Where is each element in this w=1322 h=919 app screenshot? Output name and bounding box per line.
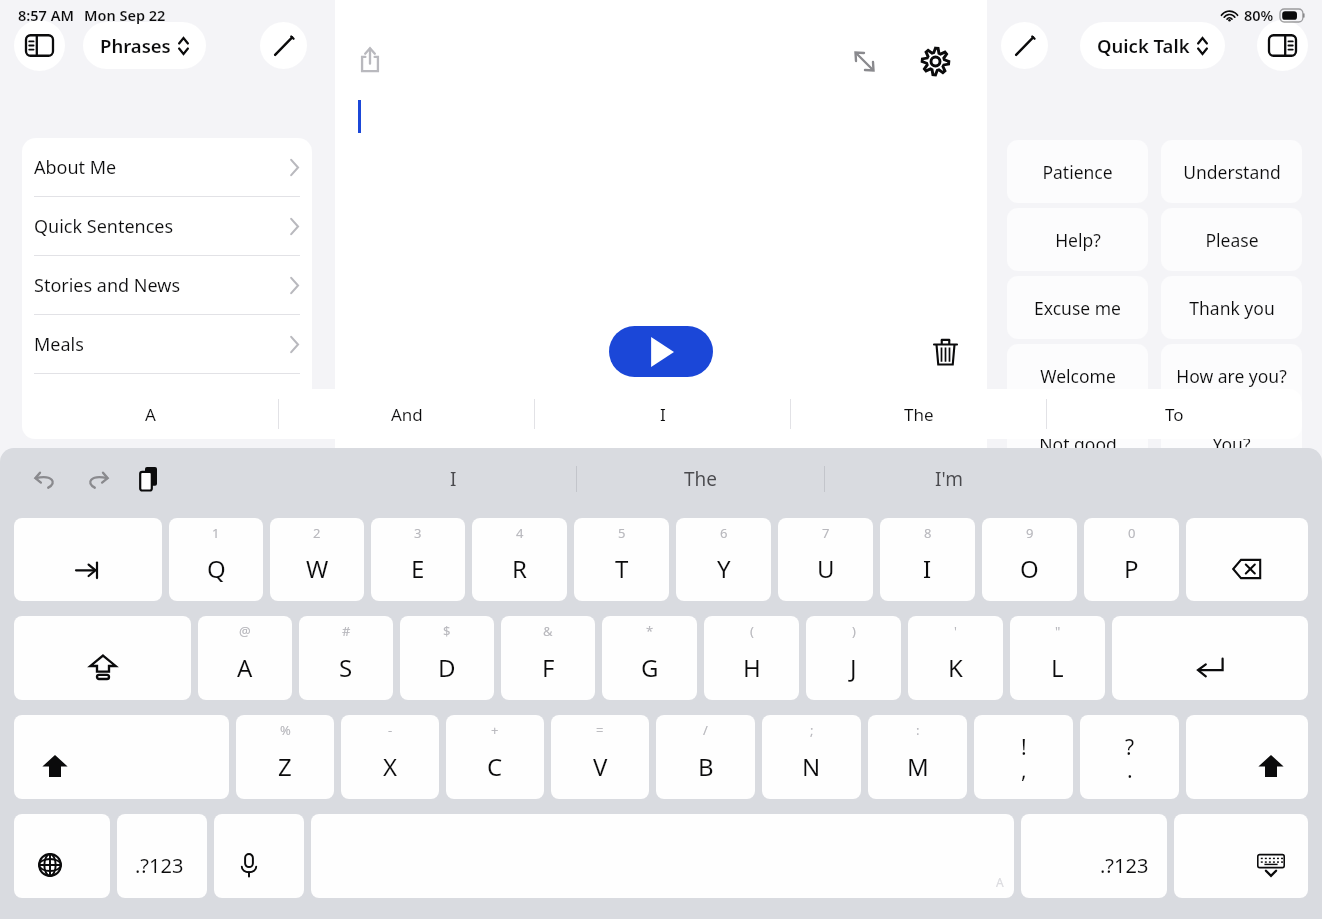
button[interactable]: ? bbox=[1080, 715, 1179, 799]
button[interactable]: 5 bbox=[574, 518, 669, 601]
button[interactable]: " bbox=[1010, 616, 1105, 700]
button[interactable]: Patience bbox=[1007, 140, 1148, 203]
staticText: .?123 bbox=[135, 852, 184, 879]
button[interactable]: Expand bbox=[829, 38, 900, 84]
button[interactable]: Shift bbox=[1186, 715, 1308, 799]
button[interactable]: - bbox=[341, 715, 439, 799]
button[interactable]: I bbox=[535, 389, 790, 439]
button[interactable]: 0 bbox=[1084, 518, 1179, 601]
button[interactable]: Hide keyboard bbox=[1174, 814, 1308, 898]
button[interactable]: + bbox=[446, 715, 544, 799]
button[interactable]: How are you? bbox=[1161, 344, 1302, 407]
staticText: Quick Talk bbox=[1097, 33, 1190, 58]
button[interactable]: Understand bbox=[1161, 140, 1302, 203]
staticText: ! bbox=[1021, 733, 1027, 762]
button[interactable]: Welcome bbox=[1007, 344, 1148, 407]
button[interactable]: 9 bbox=[982, 518, 1077, 601]
button[interactable]: Thank you bbox=[1161, 276, 1302, 339]
button[interactable]: The bbox=[577, 448, 824, 510]
button[interactable]: Switch keyboard bbox=[14, 814, 110, 898]
button[interactable]: Redo bbox=[82, 464, 112, 494]
button[interactable]: Medical Appointments bbox=[22, 374, 312, 432]
button[interactable]: About Me bbox=[22, 138, 312, 196]
button[interactable]: Toggle sidebar bbox=[14, 20, 65, 71]
button[interactable]: ' bbox=[908, 616, 1003, 700]
button[interactable]: ( bbox=[704, 616, 799, 700]
button[interactable]: 2 bbox=[270, 518, 364, 601]
button[interactable]: Dictate bbox=[214, 814, 304, 898]
button[interactable]: & bbox=[501, 616, 595, 700]
button[interactable]: Return bbox=[1112, 616, 1308, 700]
staticText: O bbox=[1020, 552, 1039, 585]
button[interactable]: Stories and News bbox=[22, 256, 312, 314]
button[interactable]: Please bbox=[1161, 208, 1302, 271]
staticText: M bbox=[907, 750, 929, 783]
button[interactable]: % bbox=[236, 715, 334, 799]
button[interactable]: 7 bbox=[778, 518, 873, 601]
button[interactable]: .?123 bbox=[1021, 814, 1167, 898]
staticText: H bbox=[743, 651, 761, 684]
button[interactable]: Excuse me bbox=[1007, 276, 1148, 339]
staticText: D bbox=[438, 651, 456, 684]
staticText: The bbox=[904, 403, 934, 426]
staticText: ) bbox=[852, 622, 856, 640]
button[interactable]: : bbox=[868, 715, 967, 799]
staticText: ' bbox=[954, 622, 957, 640]
button[interactable]: Backspace bbox=[1186, 518, 1308, 601]
button[interactable]: Play bbox=[609, 326, 713, 377]
button[interactable]: ! bbox=[974, 715, 1073, 799]
button[interactable]: = bbox=[551, 715, 649, 799]
staticText: Please bbox=[1205, 228, 1259, 252]
button[interactable]: 4 bbox=[472, 518, 567, 601]
button[interactable]: Edit bbox=[260, 22, 307, 69]
button[interactable]: Tab bbox=[14, 518, 162, 601]
button[interactable]: Phrases bbox=[83, 22, 206, 69]
staticText: R bbox=[512, 552, 527, 585]
staticText: ( bbox=[750, 622, 754, 640]
staticText: = bbox=[596, 721, 604, 739]
button[interactable]: The bbox=[791, 389, 1046, 439]
button[interactable]: I'm bbox=[825, 448, 1072, 510]
button[interactable]: Meals bbox=[22, 315, 312, 373]
button[interactable]: 3 bbox=[371, 518, 465, 601]
button[interactable]: Shift bbox=[14, 715, 229, 799]
button[interactable]: Caps lock bbox=[14, 616, 191, 700]
staticText: + bbox=[491, 721, 499, 739]
button[interactable]: .?123 bbox=[117, 814, 207, 898]
button[interactable]: # bbox=[299, 616, 393, 700]
button[interactable]: And bbox=[279, 389, 534, 439]
button[interactable]: Quick Talk bbox=[1080, 22, 1225, 69]
staticText: - bbox=[388, 721, 393, 739]
button[interactable]: / bbox=[656, 715, 755, 799]
button[interactable]: Quick Sentences bbox=[22, 197, 312, 255]
staticText: ? bbox=[1125, 733, 1135, 762]
button[interactable]: Delete bbox=[918, 324, 972, 378]
button[interactable]: Edit phrases bbox=[1001, 22, 1048, 69]
button[interactable]: 6 bbox=[676, 518, 771, 601]
button[interactable]: A bbox=[22, 389, 278, 439]
button[interactable]: $ bbox=[400, 616, 494, 700]
button[interactable]: ; bbox=[762, 715, 861, 799]
button[interactable]: To bbox=[1047, 389, 1302, 439]
button[interactable]: Settings bbox=[900, 38, 971, 84]
button[interactable]: @ bbox=[198, 616, 292, 700]
button[interactable]: Toggle panel bbox=[1257, 20, 1308, 71]
staticText: N bbox=[802, 750, 821, 783]
button[interactable]: Paste bbox=[134, 464, 164, 494]
button[interactable]: 8 bbox=[880, 518, 975, 601]
staticText: E bbox=[411, 552, 425, 585]
button[interactable]: I bbox=[330, 448, 576, 510]
button[interactable]: ) bbox=[806, 616, 901, 700]
staticText: G bbox=[641, 651, 659, 684]
button[interactable]: Undo bbox=[30, 464, 60, 494]
button[interactable]: You? bbox=[1161, 412, 1302, 475]
button[interactable]: * bbox=[602, 616, 697, 700]
staticText: Q bbox=[207, 552, 226, 585]
button[interactable]: Help? bbox=[1007, 208, 1148, 271]
button[interactable]: 1 bbox=[169, 518, 263, 601]
staticText: V bbox=[593, 750, 608, 783]
button[interactable]: Share bbox=[346, 36, 394, 84]
button[interactable]: Not good bbox=[1007, 412, 1148, 475]
staticText: 0 bbox=[1128, 524, 1136, 542]
